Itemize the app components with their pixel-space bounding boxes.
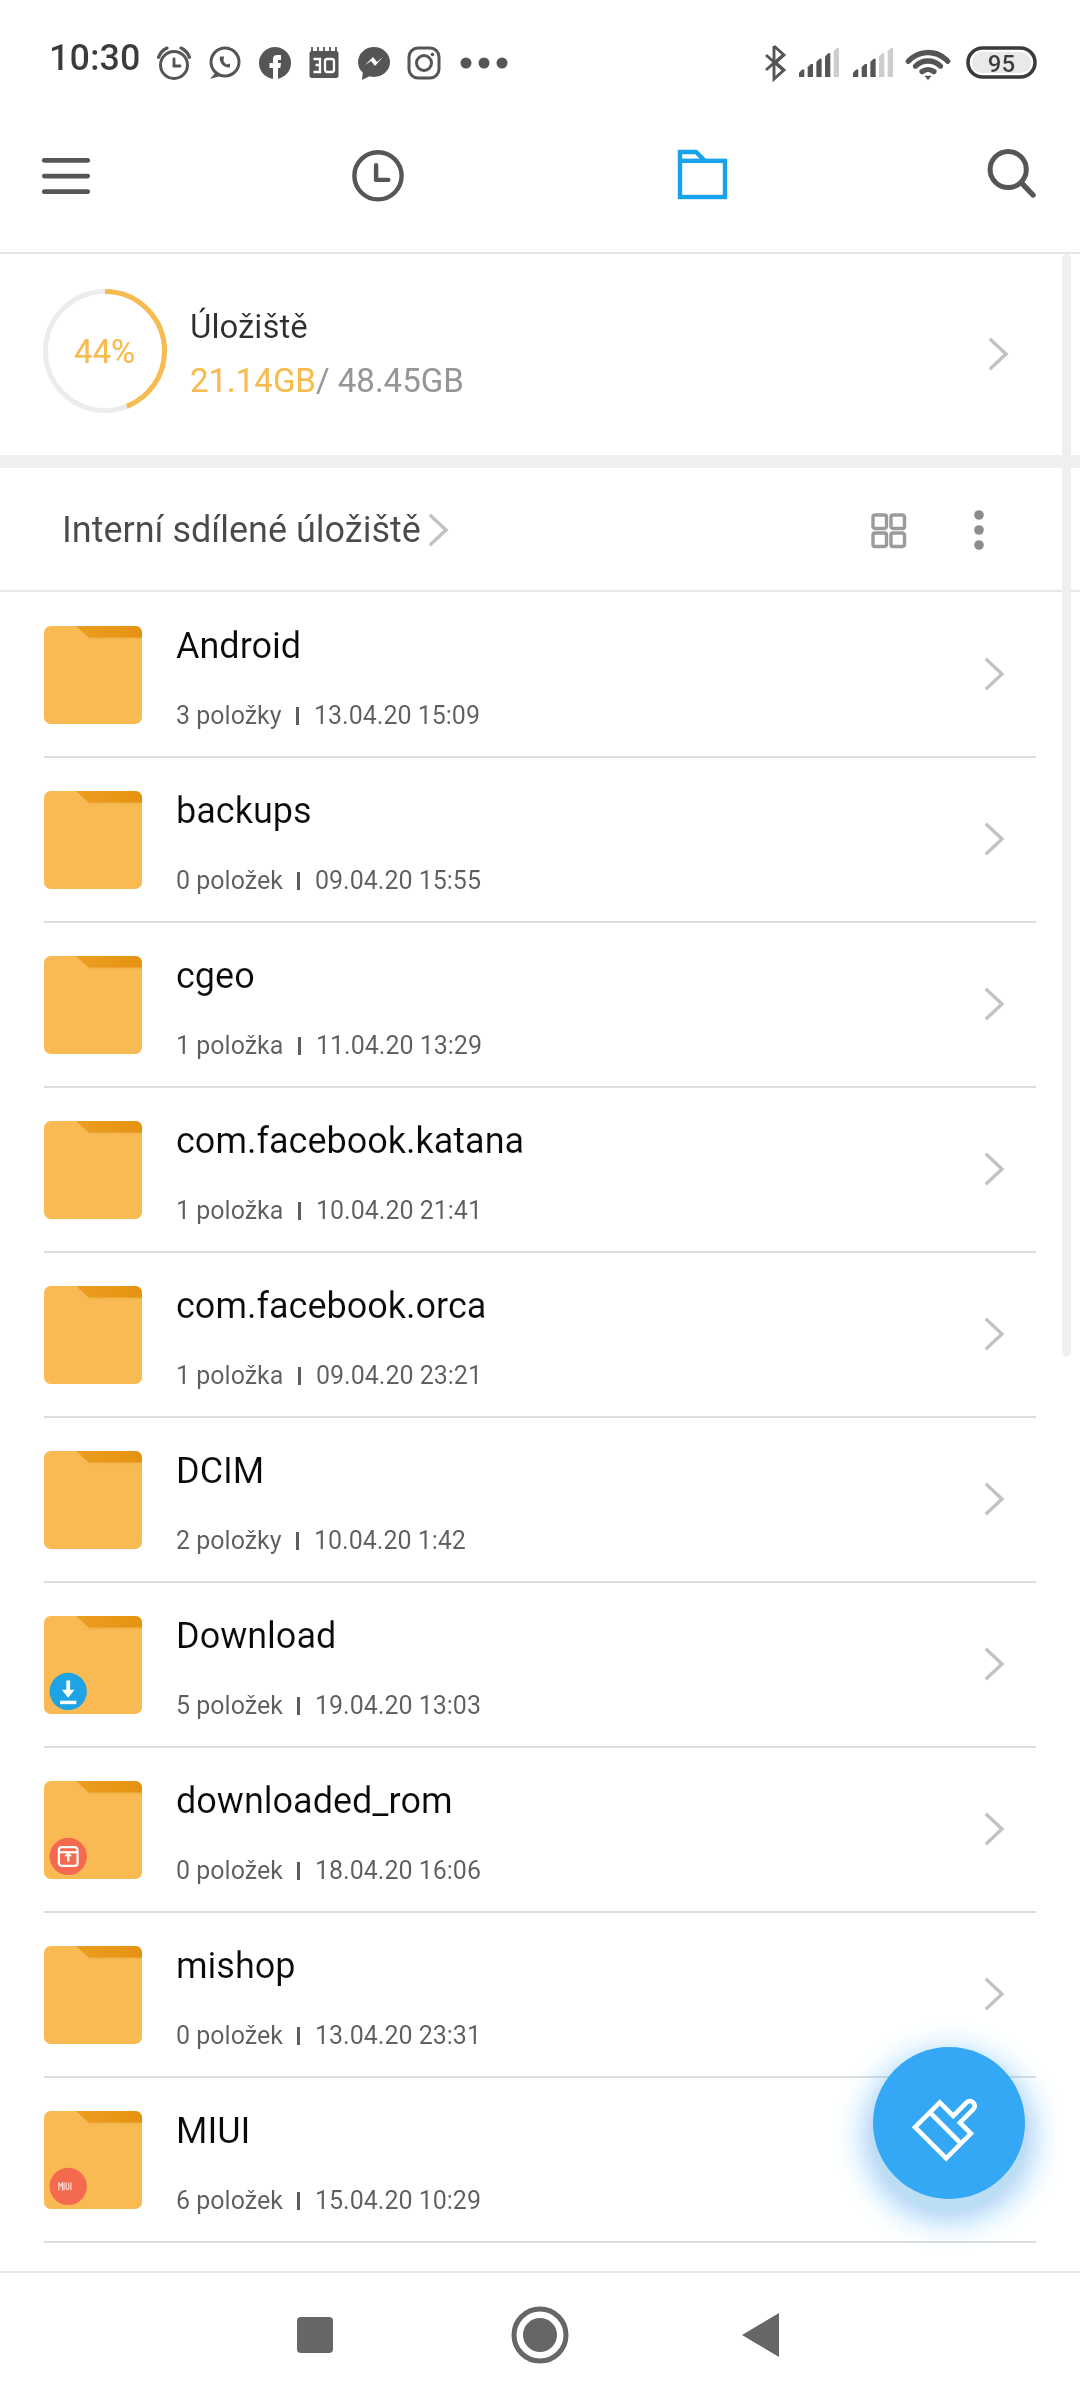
staticText: 2 položky	[176, 1526, 282, 1555]
staticText: 09.04.20 15:55	[315, 866, 481, 895]
button[interactable]: Menu	[22, 130, 112, 220]
button[interactable]: Grid view	[848, 490, 928, 570]
button[interactable]: Files	[656, 130, 746, 220]
button[interactable]: Android	[0, 593, 1080, 758]
button[interactable]: Back	[715, 2290, 805, 2380]
staticText: Úložiště	[190, 307, 308, 346]
button[interactable]: Search	[963, 130, 1053, 220]
staticText: 15.04.20 10:29	[315, 2186, 481, 2215]
staticText: Interní sdílené úložiště	[62, 509, 421, 551]
staticText: mishop	[176, 1945, 296, 1987]
staticText: Android	[176, 625, 302, 667]
button[interactable]: 44%	[0, 252, 1080, 455]
staticText: 0 položek	[176, 866, 283, 895]
staticText: com.facebook.katana	[176, 1120, 525, 1162]
staticText: 0 položek	[176, 1856, 283, 1885]
staticText: downloaded_rom	[176, 1780, 453, 1822]
staticText: Download	[176, 1615, 337, 1657]
staticText: 6 položek	[176, 2186, 283, 2215]
button[interactable]: mishop	[0, 1913, 1080, 2078]
button[interactable]: Clean up	[873, 2047, 1025, 2199]
staticText: 44%	[74, 332, 136, 371]
staticText: 13.04.20 23:31	[315, 2021, 481, 2050]
button[interactable]: DCIM	[0, 1418, 1080, 1583]
button[interactable]: Download	[0, 1583, 1080, 1748]
staticText: com.facebook.orca	[176, 1285, 487, 1327]
staticText: 0 položek	[176, 2021, 283, 2050]
staticText: / 48.45GB	[316, 361, 464, 400]
button[interactable]: backups	[0, 758, 1080, 923]
staticText: 3 položky	[176, 701, 282, 730]
staticText: 19.04.20 13:03	[315, 1691, 481, 1720]
staticText: 95	[968, 50, 1035, 78]
staticText: 1 položka	[176, 1196, 284, 1225]
staticText: 10.04.20 1:42	[314, 1526, 466, 1555]
button[interactable]: com.facebook.katana	[0, 1088, 1080, 1253]
button[interactable]: MIUI	[0, 2078, 1080, 2243]
staticText: backups	[176, 790, 312, 832]
button[interactable]: cgeo	[0, 923, 1080, 1088]
button[interactable]: Recents	[270, 2290, 360, 2380]
staticText: 13.04.20 15:09	[314, 701, 480, 730]
staticText: 21.14GB	[190, 361, 316, 400]
staticText: 1 položka	[176, 1361, 284, 1390]
button[interactable]: Recent files	[332, 130, 422, 220]
button[interactable]: downloaded_rom	[0, 1748, 1080, 1913]
button[interactable]: More options	[939, 490, 1019, 570]
button[interactable]: com.facebook.orca	[0, 1253, 1080, 1418]
staticText: cgeo	[176, 955, 255, 997]
button[interactable]: Interní sdílené úložiště	[62, 468, 461, 592]
staticText: 18.04.20 16:06	[315, 1856, 481, 1885]
staticText: 11.04.20 13:29	[316, 1031, 482, 1060]
button[interactable]: Home	[495, 2290, 585, 2380]
staticText: 1 položka	[176, 1031, 284, 1060]
staticText: 10.04.20 21:41	[316, 1196, 482, 1225]
staticText: 5 položek	[176, 1691, 283, 1720]
staticText: 10:30	[49, 37, 141, 79]
staticText: 09.04.20 23:21	[316, 1361, 482, 1390]
staticText: MIUI	[176, 2110, 251, 2152]
staticText: DCIM	[176, 1450, 265, 1492]
